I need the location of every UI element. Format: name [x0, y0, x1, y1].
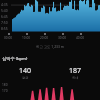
- staticText: 20:00: [40, 36, 49, 40]
- staticText: 6:45: [1, 14, 8, 19]
- staticText: 00:00: [4, 36, 13, 40]
- staticText: 180: [2, 83, 8, 87]
- staticText: 40:00: [76, 36, 85, 40]
- staticText: 170: [2, 89, 8, 93]
- staticText: 187: [69, 66, 82, 76]
- staticText: 최고 고도 1,233 m: [36, 44, 65, 49]
- staticText: 8:55: [1, 26, 8, 31]
- staticText: 10:00: [22, 36, 31, 40]
- staticText: 평균: [22, 76, 29, 80]
- staticText: 4:35: [1, 2, 8, 7]
- staticText: 심박수 (bpm): [2, 56, 28, 62]
- staticText: 30:00: [58, 36, 67, 40]
- staticText: 7:50: [1, 20, 8, 25]
- staticText: 140: [19, 66, 32, 76]
- staticText: 최대: [72, 76, 79, 80]
- staticText: 5:40: [1, 8, 8, 13]
